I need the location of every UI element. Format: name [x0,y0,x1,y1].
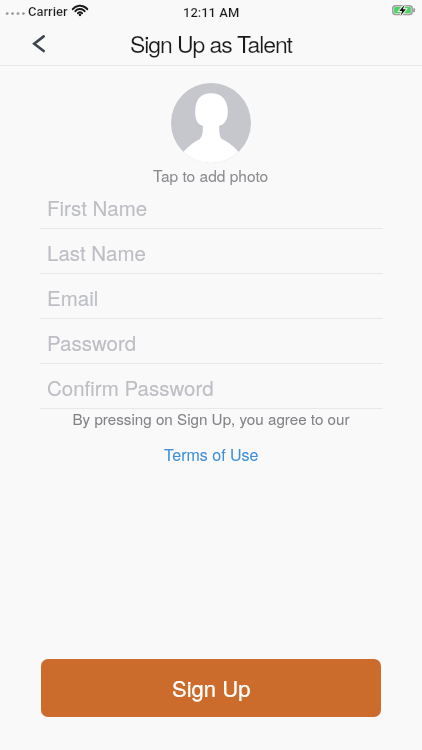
staticText: Last Name [47,237,146,266]
staticText: Email [47,282,99,311]
button[interactable]: Email [40,274,383,319]
button[interactable]: Password [40,319,383,364]
staticText: Password [47,327,137,356]
button[interactable]: Confirm Password [40,364,383,409]
staticText: Carrier [28,4,68,19]
button[interactable]: First Name [40,184,383,229]
staticText: Tap to add photo [153,164,269,186]
staticText: Sign Up as Talent [130,27,292,60]
staticText: Sign Up [172,672,251,704]
button[interactable]: Sign Up [41,659,381,717]
button[interactable]: Back [0,24,62,64]
button[interactable]: Tap to add photo [171,83,251,163]
staticText: Terms of Use [164,443,259,466]
button[interactable]: Terms of Use [158,440,265,469]
button[interactable]: Last Name [40,229,383,274]
staticText: 12:11 AM [183,5,240,20]
staticText: By pressing on Sign Up, you agree to our [72,408,350,430]
staticText: First Name [47,192,148,221]
staticText: Confirm Password [47,372,214,401]
